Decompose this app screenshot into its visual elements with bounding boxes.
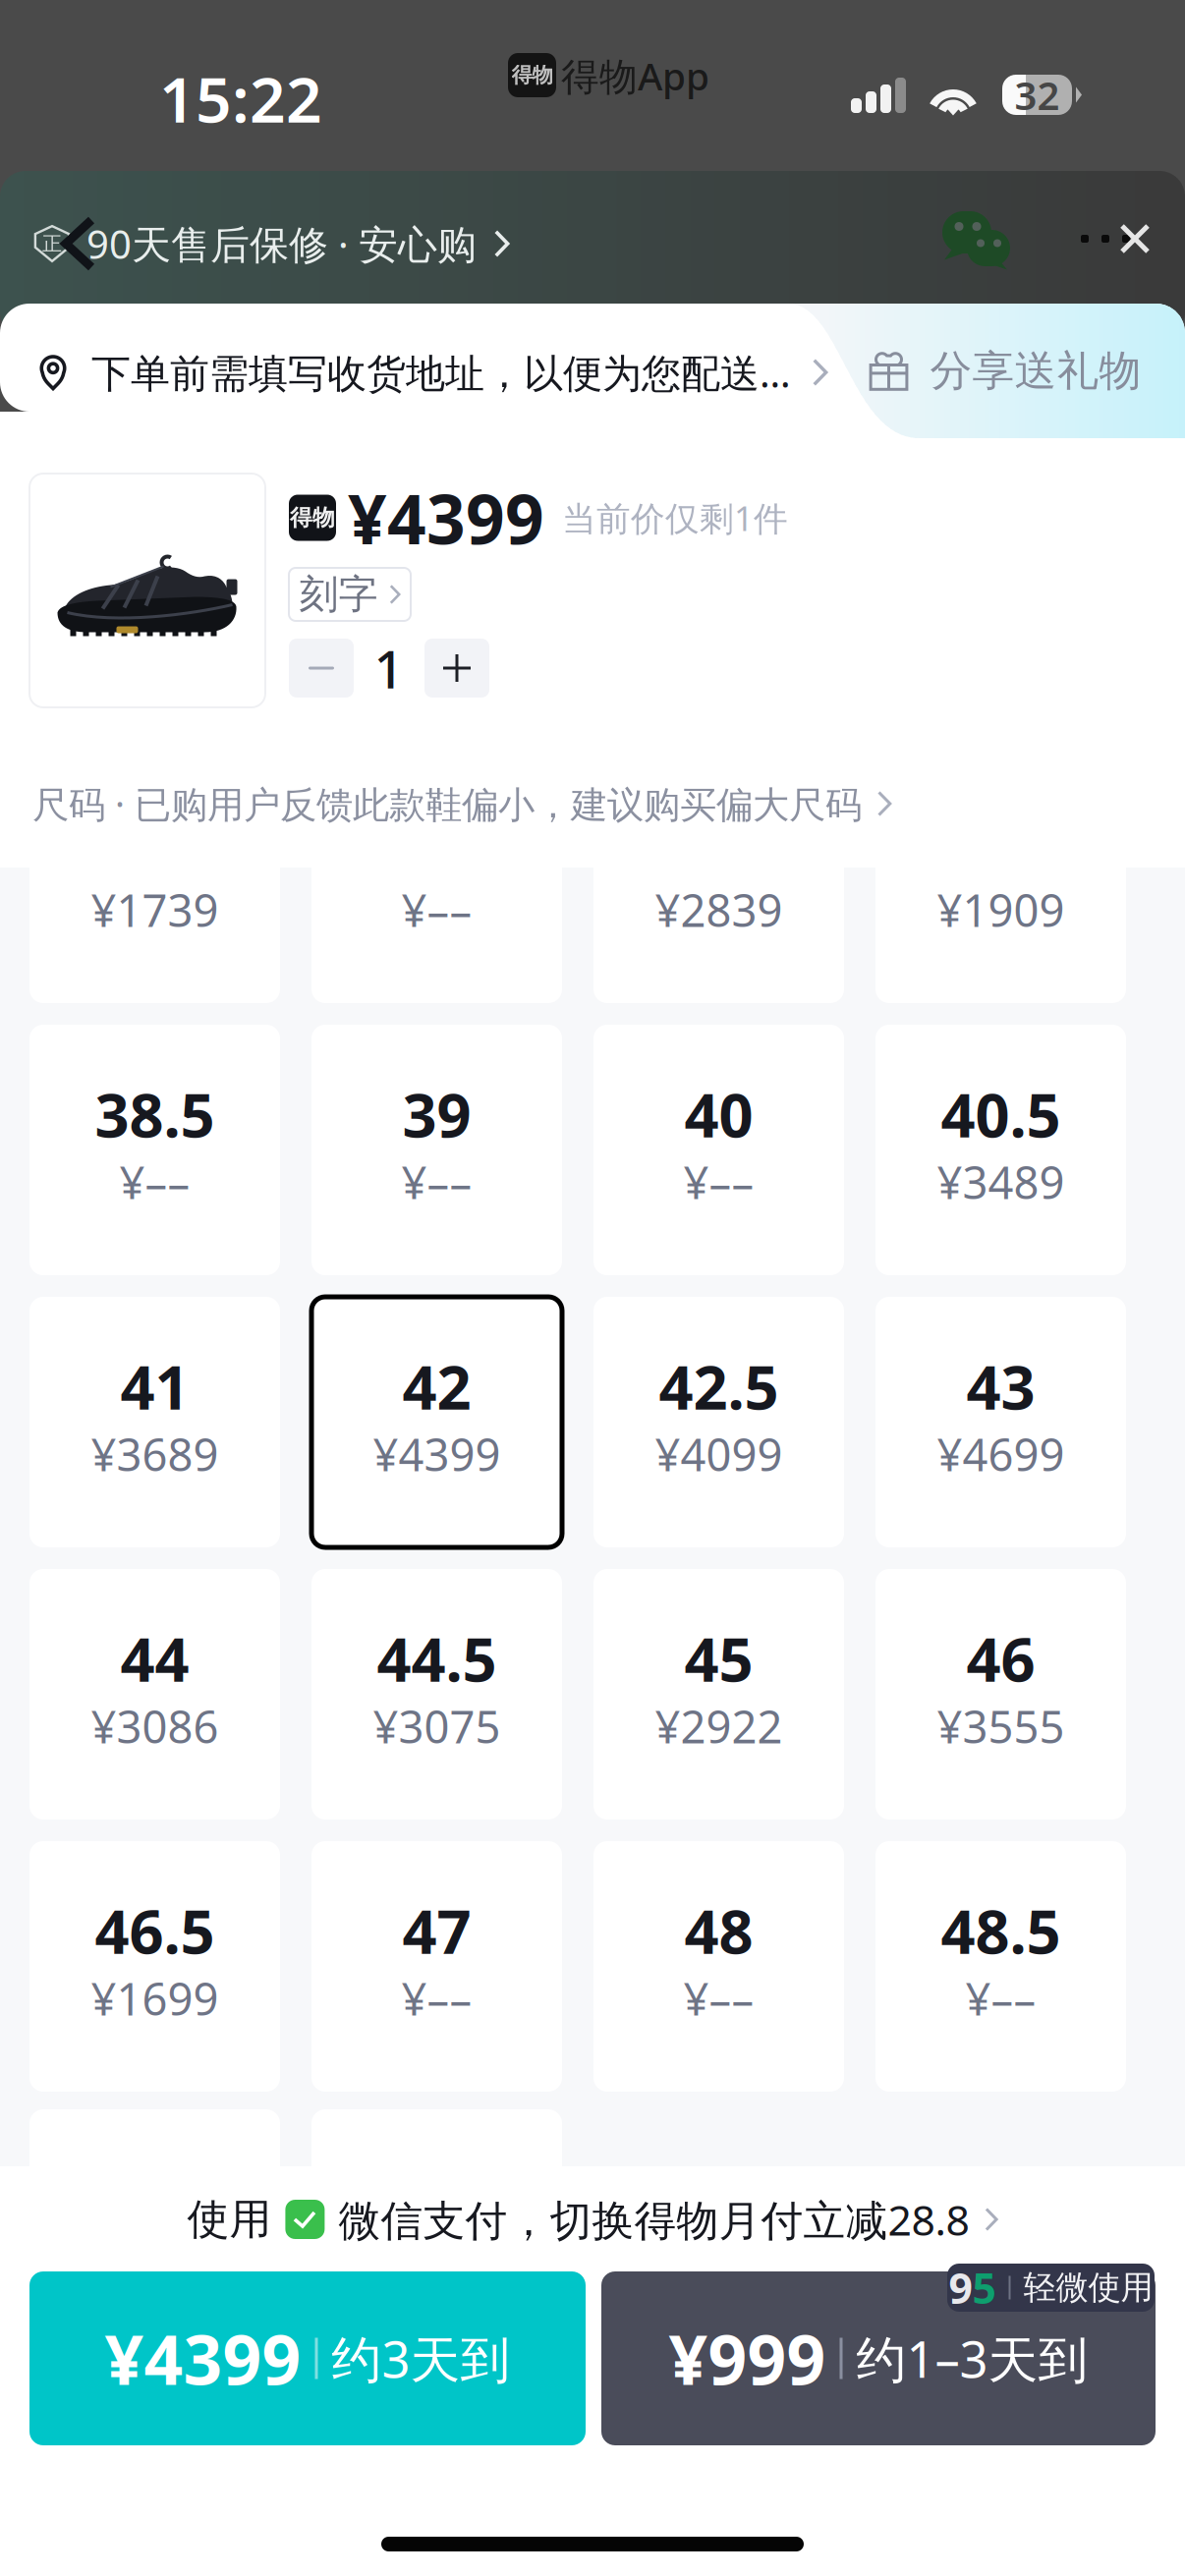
staticText: 48.5	[941, 1891, 1061, 1971]
button[interactable]: 使用	[0, 2183, 1185, 2256]
staticText: ¥2922	[655, 1697, 783, 1756]
button[interactable]: ¥2839	[593, 753, 844, 1003]
button[interactable]: 46.5	[29, 1841, 280, 2092]
button[interactable]: 44	[29, 1569, 280, 1820]
button[interactable]: 43	[875, 1297, 1126, 1547]
staticText: ¥2839	[655, 880, 783, 939]
staticText: 90天售后保修 · 安心购	[86, 218, 477, 270]
staticText: ¥––	[401, 880, 472, 939]
staticText: 44.5	[377, 1618, 497, 1698]
button[interactable]: ¥999	[601, 2271, 1156, 2445]
button[interactable]: Increase quantity	[424, 639, 489, 698]
button[interactable]: 90天售后保修 · 安心购	[86, 212, 499, 275]
staticText: 刻字	[299, 570, 378, 618]
staticText: 1	[374, 633, 404, 703]
button[interactable]: 39	[311, 1025, 562, 1275]
staticText: 正	[42, 232, 62, 256]
staticText: 约1–3天到	[856, 2325, 1088, 2391]
staticText: ¥3489	[937, 1152, 1065, 1211]
staticText: 使用	[187, 2194, 272, 2245]
staticText: 42	[402, 1346, 471, 1426]
button[interactable]: 42.5	[593, 1297, 844, 1547]
staticText: 尺码 · 已购用户反馈此款鞋偏小，建议购买偏大尺码	[32, 779, 862, 828]
button[interactable]: 47	[311, 1841, 562, 2092]
staticText: ¥4699	[937, 1424, 1065, 1484]
button[interactable]: ¥4399	[29, 2271, 586, 2445]
staticText: 轻微使用	[1023, 2268, 1153, 2308]
staticText: ¥––	[401, 1152, 472, 1211]
button[interactable]: ¥1739	[29, 753, 280, 1003]
button[interactable]: 44.5	[311, 1569, 562, 1820]
staticText: 47	[402, 1891, 471, 1971]
staticText: 48	[684, 1891, 753, 1971]
staticText: 得物	[511, 62, 553, 88]
button[interactable]: 下单前需填写收货地址，以便为您配送…	[0, 305, 786, 440]
staticText: 分享送礼物	[930, 345, 1141, 397]
staticText: 40.5	[941, 1074, 1061, 1154]
staticText: ¥1739	[91, 880, 219, 939]
button[interactable]: 46	[875, 1569, 1126, 1820]
staticText: ¥3555	[937, 1697, 1065, 1756]
staticText: ¥4099	[655, 1424, 783, 1484]
staticText: ¥4399	[373, 1424, 501, 1484]
button[interactable]: ¥––	[311, 753, 562, 1003]
staticText: 得物	[290, 504, 335, 531]
button[interactable]: 48	[593, 1841, 844, 2092]
staticText: ¥––	[683, 1152, 754, 1211]
staticText: 45	[684, 1618, 753, 1698]
button[interactable]: Close	[1120, 224, 1150, 253]
staticText: 下单前需填写收货地址，以便为您配送…	[91, 346, 791, 398]
button[interactable]: 41	[29, 1297, 280, 1547]
staticText: ¥––	[965, 1969, 1036, 2028]
staticText: 当前价仅剩1件	[562, 495, 788, 540]
button[interactable]: ¥1909	[875, 753, 1126, 1003]
staticText: ¥4399	[348, 473, 544, 563]
staticText: 38.5	[95, 1074, 215, 1154]
button[interactable]: 分享送礼物	[786, 304, 1185, 438]
button[interactable]: 48.5	[875, 1841, 1126, 2092]
staticText: ¥999	[669, 2313, 826, 2404]
staticText: 5	[972, 2260, 996, 2316]
staticText: 40	[684, 1074, 753, 1154]
staticText: ¥1699	[91, 1969, 219, 2028]
staticText: ¥3075	[373, 1697, 501, 1756]
staticText: 得物App	[561, 50, 709, 101]
button[interactable]: 刻字	[289, 568, 411, 621]
button[interactable]: More	[1081, 224, 1138, 253]
button[interactable]: 尺码 · 已购用户反馈此款鞋偏小，建议购买偏大尺码	[0, 768, 943, 839]
staticText: 43	[966, 1346, 1035, 1426]
staticText: 微信支付，切换得物月付立减28.8	[338, 2192, 969, 2247]
staticText: 9	[949, 2260, 972, 2316]
staticText: ¥1909	[937, 880, 1065, 939]
staticText: 41	[120, 1346, 189, 1426]
button[interactable]: Decrease quantity	[289, 639, 354, 698]
staticText: 约3天到	[332, 2325, 510, 2391]
staticText: ¥––	[401, 1969, 472, 2028]
staticText: ¥3086	[91, 1697, 219, 1756]
staticText: ¥3689	[91, 1424, 219, 1484]
staticText: 15:22	[159, 56, 322, 140]
button[interactable]: 40	[593, 1025, 844, 1275]
button[interactable]: 38.5	[29, 1025, 280, 1275]
staticText: 44	[120, 1618, 189, 1698]
staticText: ¥4399	[105, 2313, 301, 2404]
staticText: ¥––	[683, 1969, 754, 2028]
staticText: 46	[966, 1618, 1035, 1698]
staticText: 42.5	[659, 1346, 779, 1426]
staticText: ¥––	[119, 1152, 190, 1211]
staticText: 39	[402, 1074, 471, 1154]
staticText: 32	[1015, 69, 1060, 121]
button[interactable]: 40.5	[875, 1025, 1126, 1275]
staticText: 46.5	[95, 1891, 215, 1971]
button[interactable]: WeChat	[942, 211, 1010, 267]
button[interactable]: 45	[593, 1569, 844, 1820]
button[interactable]: 42	[311, 1297, 562, 1547]
